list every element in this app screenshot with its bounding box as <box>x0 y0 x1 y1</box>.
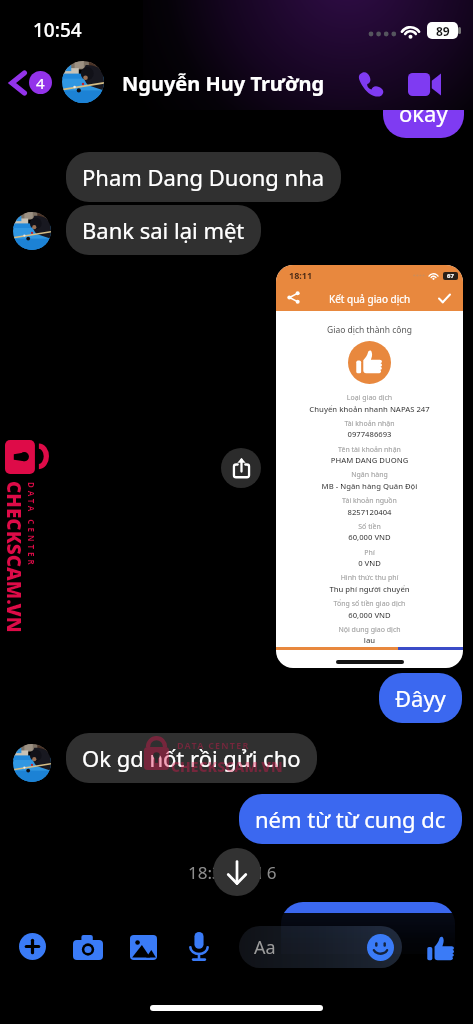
staticText: Bank sai lại mệt <box>82 215 245 245</box>
staticText: 8257120404 <box>276 507 463 517</box>
button[interactable]: Đâyy <box>379 673 462 723</box>
button[interactable]: Gallery <box>130 934 157 961</box>
staticText: 0977486693 <box>276 429 463 439</box>
staticText: Loại giao dịch <box>276 393 463 403</box>
button[interactable]: Camera <box>73 934 103 960</box>
button[interactable]: Audio call <box>350 62 392 104</box>
staticText: Nguyễn Huy Trường <box>122 70 325 97</box>
button[interactable]: Aa <box>239 926 402 968</box>
staticText: Tài khoản nhận <box>276 419 463 429</box>
button[interactable]: Bank sai lại mệt <box>66 205 261 255</box>
button[interactable]: okay <box>383 88 464 138</box>
button[interactable]: Send like <box>425 933 456 964</box>
staticText: Thu phí người chuyển <box>276 584 463 594</box>
staticText: Ok gd nốt rồi gửi cho <box>82 743 301 773</box>
staticText: ném từ từ cung dc <box>255 804 446 834</box>
staticText: 60,000 VND <box>276 532 463 542</box>
staticText: Pham Dang Duong nha <box>82 162 325 192</box>
button[interactable]: Pham Dang Duong nha <box>66 152 341 202</box>
staticText: okay <box>399 98 448 128</box>
staticText: Tổng số tiền giao dịch <box>276 599 463 609</box>
staticText: 18:32 TH 6 <box>188 861 277 884</box>
staticText: PHAM DANG DUONG <box>276 455 463 465</box>
staticText: Phí <box>276 548 463 558</box>
staticText: Tên tài khoản nhận <box>276 445 463 455</box>
staticText: 67 <box>447 272 454 280</box>
button[interactable]: Back, 4 unread <box>8 55 56 110</box>
button[interactable]: ném từ từ cung dc <box>239 794 462 844</box>
staticText: Giao dịch thành công <box>276 324 463 336</box>
button[interactable]: Share <box>221 448 261 488</box>
staticText: 18:11 <box>289 269 313 281</box>
button[interactable]: Add attachment <box>19 933 46 960</box>
staticText: Tài khoản nguồn <box>276 496 463 506</box>
staticText: 0 VND <box>276 558 463 568</box>
staticText: 10:54 <box>33 17 82 43</box>
staticText: Chuyển khoản nhanh NAPAS 247 <box>276 404 463 414</box>
staticText: DATA CENTER <box>177 739 250 751</box>
button[interactable]: Video call <box>402 62 446 106</box>
staticText: Hình thức thu phí <box>276 573 463 583</box>
staticText: DATA CENTER <box>26 482 37 568</box>
staticText: lau <box>276 635 463 645</box>
staticText: Ngân hàng <box>276 470 463 480</box>
staticText: 4 <box>36 73 45 93</box>
staticText: Số tiền <box>276 522 463 532</box>
staticText: 60,000 VND <box>276 610 463 620</box>
staticText: CHECKSCAM.VN <box>171 757 283 776</box>
staticText: Nội dung giao dịch <box>276 625 463 635</box>
button[interactable]: Voice message <box>187 932 211 961</box>
staticText: Kết quả giao dịch <box>329 292 411 306</box>
button[interactable]: Ok gd nốt rồi gửi cho <box>66 733 317 783</box>
staticText: MB - Ngân hàng Quân Đội <box>276 481 463 491</box>
staticText: Aa <box>254 935 276 960</box>
staticText: Đâyy <box>395 683 446 713</box>
staticText: 89 <box>436 23 450 39</box>
button[interactable]: Scroll to bottom <box>213 848 261 896</box>
staticText: CHECKSCAM.VN <box>1 481 27 633</box>
